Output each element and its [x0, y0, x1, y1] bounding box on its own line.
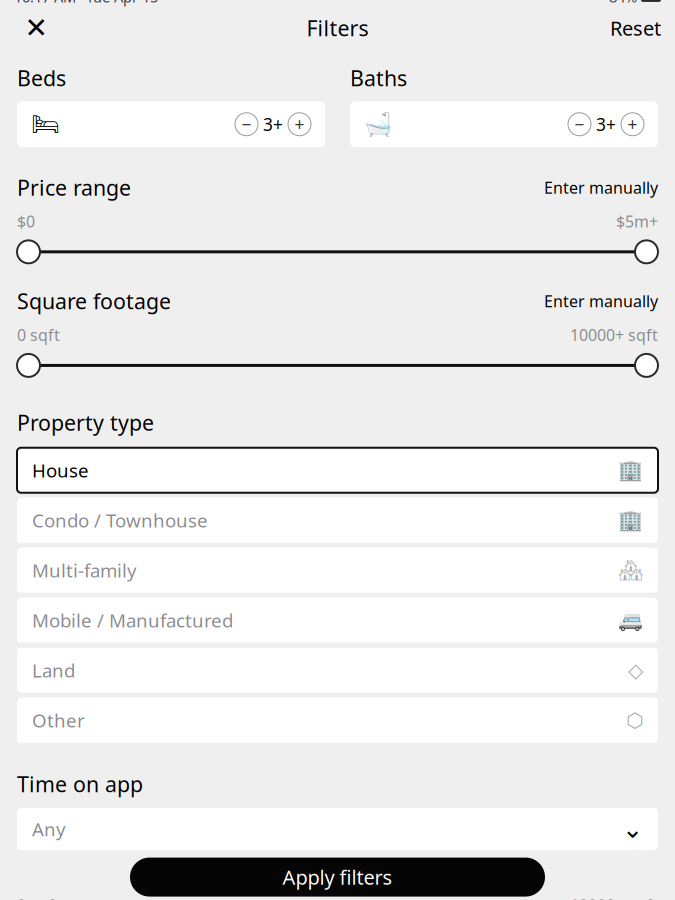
button[interactable]: Condo / Townhouse — [17, 498, 658, 543]
button[interactable]: Decrease Beds — [235, 113, 258, 136]
staticText: 0 sqft — [17, 894, 60, 900]
staticText: Apply filters — [282, 864, 392, 890]
staticText: ✕ — [24, 12, 47, 44]
button[interactable]: Multi-family — [17, 548, 658, 593]
staticText: Reset — [610, 15, 661, 41]
staticText: $0 — [17, 211, 35, 232]
button[interactable]: Increase Baths — [621, 113, 644, 136]
staticText: 🏘 — [618, 559, 643, 582]
button[interactable]: House — [17, 448, 658, 493]
button[interactable]: Mobile / Manufactured — [17, 598, 658, 643]
staticText: Mobile / Manufactured — [32, 608, 233, 633]
staticText: Baths — [350, 64, 407, 92]
staticText: 🏢 — [618, 459, 643, 482]
staticText: Enter manually — [544, 177, 658, 198]
staticText: Property type — [17, 408, 154, 437]
staticText: House — [32, 458, 89, 483]
staticText: − — [241, 113, 251, 136]
button[interactable]: Enter manually — [544, 290, 658, 312]
staticText: Square footage — [17, 287, 171, 315]
staticText: Tue Apr 15 — [86, 0, 158, 7]
staticText: 10:17 AM — [14, 0, 76, 7]
staticText: Multi-family — [32, 558, 137, 583]
staticText: Time on app — [17, 770, 143, 798]
staticText: 3+ — [596, 113, 616, 136]
staticText: Filters — [306, 14, 368, 42]
staticText: 3+ — [263, 113, 283, 136]
button[interactable]: Land — [17, 648, 658, 693]
staticText: 🛁 — [364, 111, 392, 137]
staticText: Price range — [17, 173, 131, 202]
staticText: 0 sqft — [17, 324, 60, 345]
button[interactable]: Reset — [610, 8, 661, 48]
staticText: 🏢 — [618, 509, 643, 532]
staticText: + — [294, 113, 304, 136]
button[interactable]: Other — [17, 698, 658, 743]
staticText: − — [574, 113, 584, 136]
staticText: 10000+ sqft — [570, 324, 658, 345]
staticText: Beds — [17, 64, 66, 92]
staticText: ⬡ — [626, 709, 643, 732]
button[interactable]: Any — [17, 808, 658, 850]
staticText: Condo / Townhouse — [32, 508, 208, 533]
staticText: 🚐 — [618, 609, 643, 632]
staticText: 10000+ sqft — [570, 894, 658, 900]
staticText: + — [627, 113, 637, 136]
staticText: Enter manually — [544, 290, 658, 312]
staticText: Other — [32, 708, 85, 733]
staticText: 84% — [609, 0, 637, 7]
button[interactable]: Close — [14, 8, 58, 48]
button[interactable]: Increase Beds — [288, 113, 311, 136]
staticText: Land — [32, 658, 75, 683]
button[interactable]: Decrease Baths — [568, 113, 591, 136]
staticText: ◇ — [628, 659, 643, 682]
button[interactable]: Enter manually — [544, 177, 658, 198]
staticText: Any — [32, 817, 66, 841]
staticText: $5m+ — [616, 211, 658, 232]
staticText: ⌄ — [622, 815, 643, 843]
staticText: 🛏 — [31, 111, 60, 137]
button[interactable]: Apply filters — [130, 858, 545, 897]
